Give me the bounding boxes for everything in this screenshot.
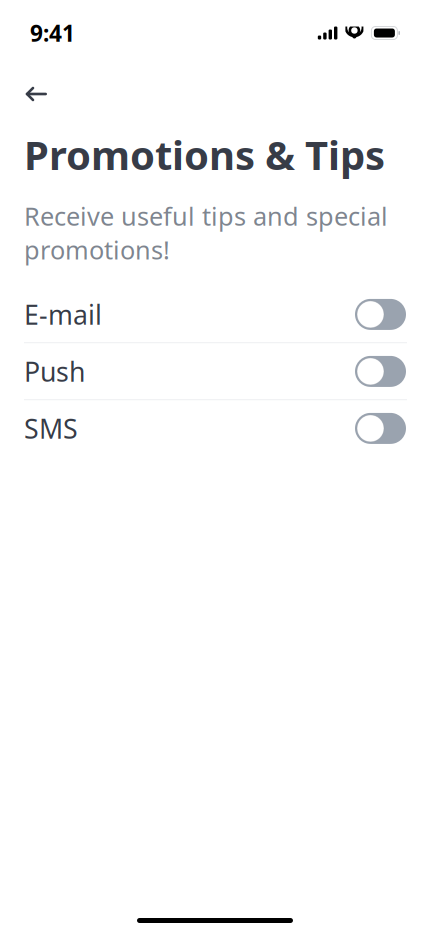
button[interactable]: SMS <box>0 400 430 456</box>
staticText: 9:41 <box>30 18 75 48</box>
button[interactable]: Push <box>0 343 430 399</box>
button[interactable]: Back <box>14 74 58 114</box>
staticText: Push <box>24 354 85 389</box>
staticText: Promotions & Tips <box>24 128 385 181</box>
staticText: SMS <box>24 411 78 446</box>
staticText: Receive useful tips and special promotio… <box>24 199 388 266</box>
button[interactable]: E-mail <box>0 286 430 342</box>
staticText: E-mail <box>24 297 102 332</box>
